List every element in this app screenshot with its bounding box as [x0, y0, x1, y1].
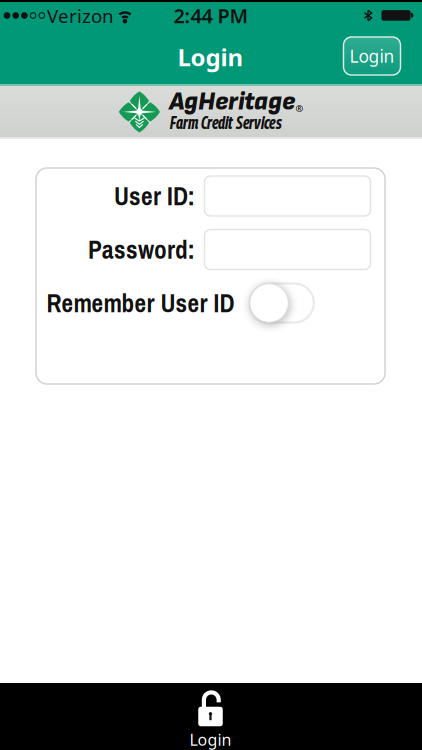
staticText: 2:44 PM [173, 2, 248, 29]
button[interactable]: Remember User ID toggle [250, 283, 314, 322]
button[interactable]: Login [343, 37, 400, 75]
staticText: ® [295, 102, 303, 115]
button[interactable]: User ID text field [204, 176, 370, 216]
button[interactable]: Password text field [204, 229, 370, 269]
staticText: Verizon [47, 3, 114, 28]
staticText: Login [189, 729, 231, 750]
staticText: User ID: [114, 179, 195, 213]
button[interactable]: Login tab [0, 683, 422, 750]
staticText: Remember User ID [46, 286, 234, 320]
staticText: AgHeritage [169, 87, 295, 117]
staticText: Login [349, 44, 394, 67]
staticText: Password: [88, 232, 195, 266]
staticText: Farm Credit Services [170, 112, 282, 133]
staticText: Login [177, 41, 243, 73]
